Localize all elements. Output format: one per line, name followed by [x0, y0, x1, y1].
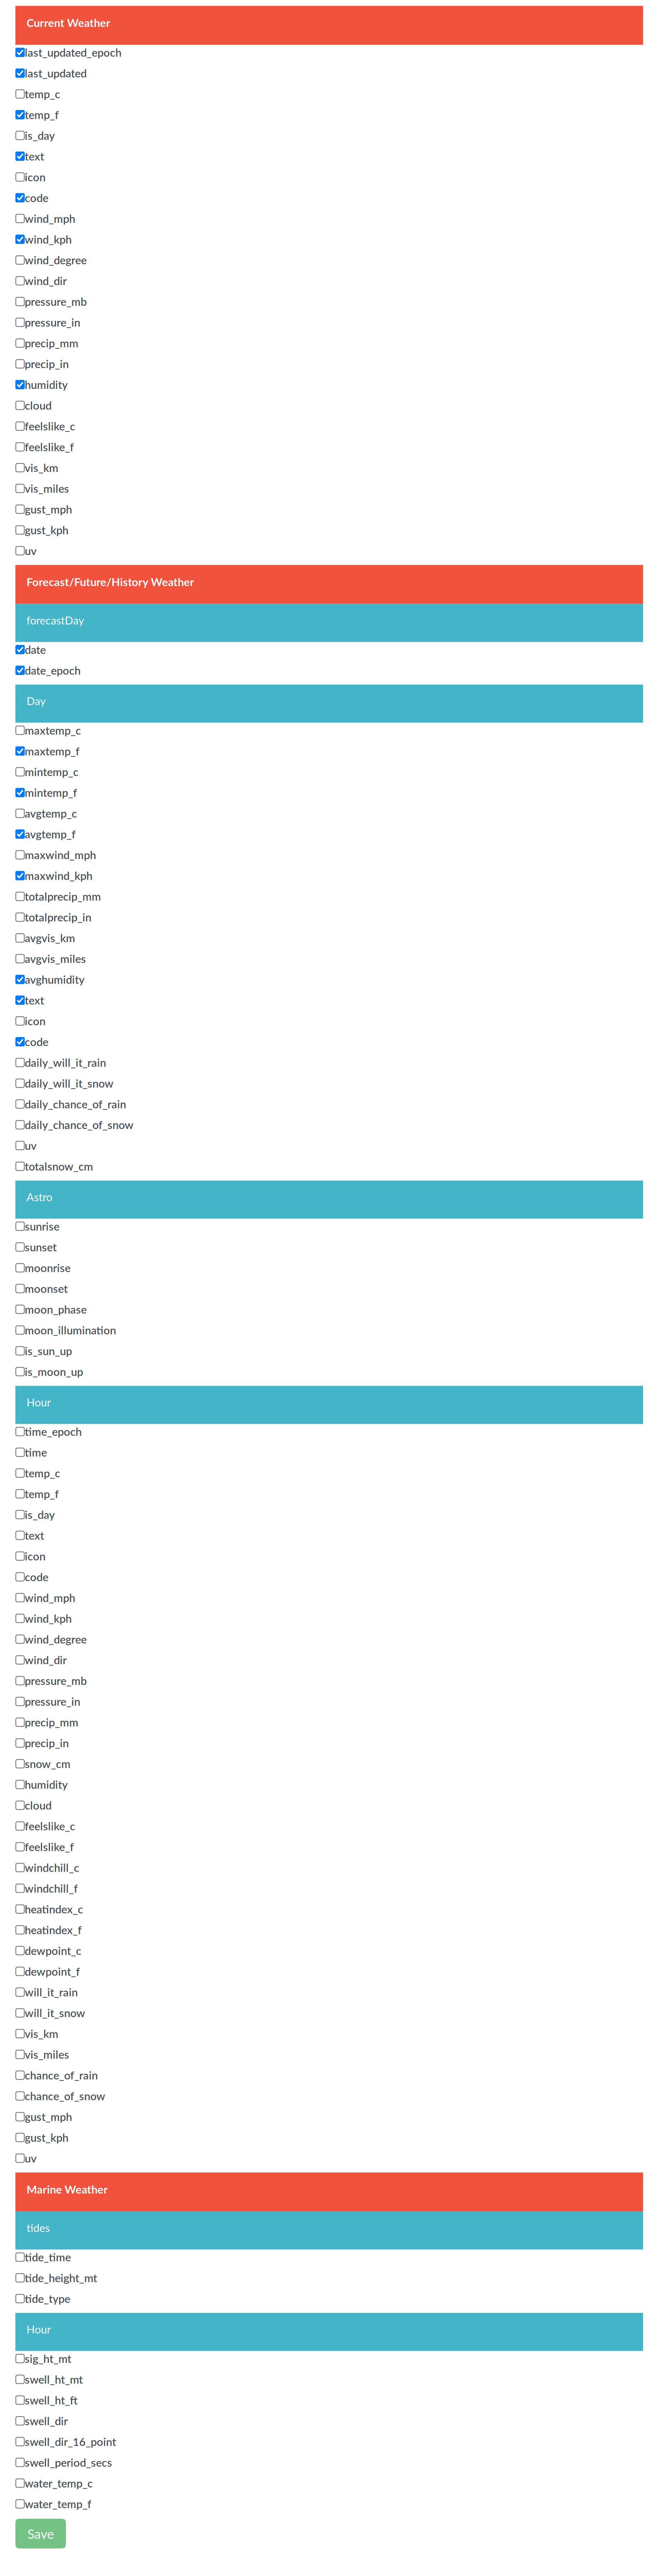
button[interactable]: windchill_f — [15, 1884, 643, 1893]
button[interactable]: totalprecip_in — [15, 912, 643, 922]
button[interactable]: pressure_mb — [15, 297, 643, 306]
button[interactable]: feelslike_c — [15, 421, 643, 431]
button[interactable]: icon — [15, 172, 643, 182]
button[interactable]: temp_c — [15, 1468, 643, 1478]
button[interactable]: dewpoint_f — [15, 1967, 643, 1976]
button[interactable]: swell_ht_mt — [15, 2375, 643, 2384]
button[interactable]: will_it_snow — [15, 2008, 643, 2018]
button[interactable]: maxwind_mph — [15, 850, 643, 859]
button[interactable]: icon — [15, 1551, 643, 1561]
button[interactable]: precip_in — [15, 359, 643, 368]
button[interactable]: temp_c — [15, 89, 643, 99]
button[interactable]: uv — [15, 546, 643, 555]
button[interactable]: cloud — [15, 401, 643, 410]
button[interactable]: moon_illumination — [15, 1325, 643, 1335]
button[interactable]: pressure_in — [15, 318, 643, 327]
button[interactable]: maxtemp_c — [15, 726, 643, 735]
button[interactable]: maxwind_kph — [15, 871, 643, 880]
button[interactable]: chance_of_rain — [15, 2071, 643, 2080]
button[interactable]: last_updated_epoch — [15, 48, 643, 57]
button[interactable]: tide_type — [15, 2294, 643, 2303]
button[interactable]: time_epoch — [15, 1427, 643, 1436]
button[interactable]: tide_time — [15, 2252, 643, 2262]
button[interactable]: last_updated — [15, 68, 643, 78]
button[interactable]: mintemp_f — [15, 788, 643, 797]
button[interactable]: precip_in — [15, 1738, 643, 1748]
button[interactable]: wind_dir — [15, 276, 643, 285]
button[interactable]: uv — [15, 1141, 643, 1150]
button[interactable]: tide_height_mt — [15, 2273, 643, 2283]
button[interactable]: swell_ht_ft — [15, 2395, 643, 2405]
button[interactable]: mintemp_c — [15, 767, 643, 776]
button[interactable]: avgvis_miles — [15, 954, 643, 963]
button[interactable]: totalprecip_mm — [15, 892, 643, 901]
button[interactable]: text — [15, 996, 643, 1005]
button[interactable]: avgtemp_f — [15, 829, 643, 839]
button[interactable]: wind_mph — [15, 1593, 643, 1602]
button[interactable]: swell_dir — [15, 2416, 643, 2426]
button[interactable]: vis_miles — [15, 484, 643, 493]
button[interactable]: uv — [15, 2154, 643, 2163]
button[interactable]: wind_degree — [15, 1635, 643, 1644]
button[interactable]: will_it_rain — [15, 1987, 643, 1997]
button[interactable]: swell_dir_16_point — [15, 2437, 643, 2446]
button[interactable]: daily_chance_of_rain — [15, 1099, 643, 1109]
button[interactable]: gust_kph — [15, 2133, 643, 2142]
button[interactable]: feelslike_f — [15, 442, 643, 452]
button[interactable]: avghumidity — [15, 975, 643, 984]
button[interactable]: sig_ht_mt — [15, 2354, 643, 2363]
button[interactable]: wind_kph — [15, 1614, 643, 1623]
button[interactable]: moon_phase — [15, 1305, 643, 1314]
button[interactable]: date — [15, 645, 643, 654]
button[interactable]: heatindex_c — [15, 1904, 643, 1914]
button[interactable]: wind_mph — [15, 214, 643, 223]
button[interactable]: water_temp_f — [15, 2499, 643, 2509]
button[interactable]: daily_will_it_rain — [15, 1058, 643, 1067]
button[interactable]: vis_miles — [15, 2050, 643, 2059]
button[interactable]: text — [15, 152, 643, 161]
button[interactable]: precip_mm — [15, 1718, 643, 1727]
button[interactable]: date_epoch — [15, 666, 643, 675]
button[interactable]: feelslike_c — [15, 1821, 643, 1831]
button[interactable]: totalsnow_cm — [15, 1162, 643, 1171]
button[interactable]: maxtemp_f — [15, 746, 643, 756]
button[interactable]: dewpoint_c — [15, 1946, 643, 1955]
button[interactable]: wind_dir — [15, 1655, 643, 1665]
button[interactable]: is_day — [15, 1510, 643, 1519]
button[interactable]: heatindex_f — [15, 1925, 643, 1934]
button[interactable]: wind_kph — [15, 235, 643, 244]
button[interactable]: precip_mm — [15, 338, 643, 348]
button[interactable]: pressure_mb — [15, 1676, 643, 1685]
button[interactable]: vis_km — [15, 463, 643, 472]
button[interactable]: is_day — [15, 131, 643, 140]
button[interactable]: swell_period_secs — [15, 2458, 643, 2467]
button[interactable]: time — [15, 1448, 643, 1457]
button[interactable]: is_sun_up — [15, 1346, 643, 1355]
button[interactable]: gust_mph — [15, 2112, 643, 2121]
button[interactable]: daily_will_it_snow — [15, 1079, 643, 1088]
button[interactable]: code — [15, 193, 643, 202]
button[interactable]: gust_kph — [15, 525, 643, 535]
button[interactable]: humidity — [15, 380, 643, 389]
button[interactable]: sunset — [15, 1242, 643, 1252]
button[interactable]: avgtemp_c — [15, 809, 643, 818]
button[interactable]: icon — [15, 1016, 643, 1026]
button[interactable]: vis_km — [15, 2029, 643, 2038]
button[interactable]: windchill_c — [15, 1863, 643, 1872]
button[interactable]: sunrise — [15, 1222, 643, 1231]
button[interactable]: code — [15, 1037, 643, 1046]
button[interactable]: chance_of_snow — [15, 2091, 643, 2101]
button[interactable]: moonrise — [15, 1263, 643, 1272]
button[interactable]: gust_mph — [15, 505, 643, 514]
button[interactable]: avgvis_km — [15, 933, 643, 943]
button[interactable]: snow_cm — [15, 1759, 643, 1768]
button[interactable]: pressure_in — [15, 1697, 643, 1706]
button[interactable]: temp_f — [15, 110, 643, 119]
button[interactable]: water_temp_c — [15, 2478, 643, 2488]
button[interactable]: feelslike_f — [15, 1842, 643, 1851]
button[interactable]: humidity — [15, 1780, 643, 1789]
button[interactable]: Save — [15, 2519, 66, 2548]
button[interactable]: moonset — [15, 1284, 643, 1293]
button[interactable]: cloud — [15, 1801, 643, 1810]
button[interactable]: daily_chance_of_snow — [15, 1120, 643, 1129]
